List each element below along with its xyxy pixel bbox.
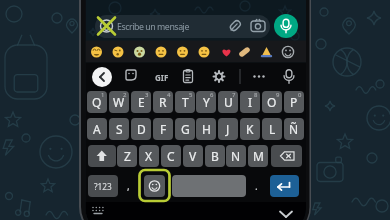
staticText: A — [93, 121, 101, 137]
staticText: G — [181, 121, 190, 137]
staticText: C — [167, 148, 175, 164]
button[interactable]: P — [284, 91, 304, 113]
button[interactable]: Y — [196, 91, 216, 113]
button[interactable]: , — [120, 175, 136, 197]
button[interactable]: Q — [87, 91, 107, 113]
button[interactable]: G — [175, 118, 195, 140]
staticText: 0 — [298, 91, 302, 99]
button[interactable] — [271, 145, 302, 167]
staticText: Z — [124, 148, 131, 164]
staticText: I — [248, 94, 253, 110]
staticText: P — [290, 94, 298, 110]
button[interactable]: S — [109, 118, 129, 140]
staticText: ?123 — [94, 181, 112, 192]
button[interactable]: O — [262, 91, 282, 113]
staticText: N — [231, 148, 241, 164]
staticText: E — [138, 94, 145, 110]
staticText: O — [267, 94, 277, 110]
button[interactable]: D — [131, 118, 151, 140]
button[interactable]: I — [240, 91, 260, 113]
button[interactable]: Z — [117, 145, 137, 167]
staticText: . — [255, 179, 258, 193]
button[interactable]: C — [161, 145, 181, 167]
staticText: S — [116, 121, 123, 137]
button[interactable] — [274, 14, 298, 38]
staticText: H — [202, 121, 211, 137]
button[interactable] — [90, 204, 106, 216]
staticText: Q — [92, 94, 102, 110]
button[interactable]: R — [153, 91, 173, 113]
staticText: M — [253, 148, 264, 164]
staticText: D — [137, 121, 146, 137]
staticText: 9 — [276, 91, 280, 99]
button[interactable]: ?123 — [88, 175, 118, 197]
button[interactable] — [88, 145, 116, 167]
staticText: U — [224, 94, 233, 110]
staticText: 8 — [254, 91, 258, 99]
staticText: , — [127, 179, 130, 193]
staticText: 4 — [167, 91, 171, 99]
button[interactable] — [275, 208, 297, 220]
staticText: 1 — [101, 91, 105, 99]
button[interactable]: M — [248, 145, 268, 167]
button[interactable]: Escribe un mensaje — [95, 15, 270, 38]
button[interactable]: W — [109, 91, 129, 113]
staticText: 7 — [232, 91, 236, 99]
staticText: 6 — [210, 91, 214, 99]
staticText: 2 — [123, 91, 127, 99]
staticText: 3 — [145, 91, 149, 99]
staticText: 5 — [189, 91, 193, 99]
button[interactable]: . — [247, 175, 265, 197]
button[interactable]: B — [205, 145, 225, 167]
button[interactable]: K — [240, 118, 260, 140]
button[interactable] — [92, 67, 112, 87]
staticText: B — [211, 148, 219, 164]
staticText: Y — [203, 94, 210, 110]
button[interactable]: U — [218, 91, 238, 113]
button[interactable] — [86, 41, 306, 63]
button[interactable]: E — [131, 91, 151, 113]
button[interactable]: T — [175, 91, 195, 113]
staticText: R — [159, 94, 167, 110]
button[interactable]: L — [262, 118, 282, 140]
button[interactable]: A — [87, 118, 107, 140]
button[interactable] — [172, 175, 246, 197]
button[interactable]: X — [139, 145, 159, 167]
staticText: K — [246, 121, 254, 137]
button[interactable] — [144, 175, 165, 197]
staticText: F — [160, 121, 167, 137]
staticText: GIF — [155, 72, 169, 83]
button[interactable] — [270, 175, 299, 197]
button[interactable]: V — [183, 145, 203, 167]
staticText: Escribe un mensaje — [117, 21, 189, 33]
button[interactable]: Ñ — [284, 118, 304, 140]
staticText: Ñ — [289, 121, 299, 137]
staticText: X — [145, 148, 153, 164]
button[interactable]: F — [153, 118, 173, 140]
staticText: L — [269, 121, 276, 137]
button[interactable]: N — [226, 145, 246, 167]
staticText: W — [113, 94, 125, 110]
staticText: T — [182, 94, 189, 110]
button[interactable]: H — [196, 118, 216, 140]
staticText: J — [226, 121, 230, 137]
staticText: V — [189, 148, 197, 164]
button[interactable]: J — [218, 118, 238, 140]
